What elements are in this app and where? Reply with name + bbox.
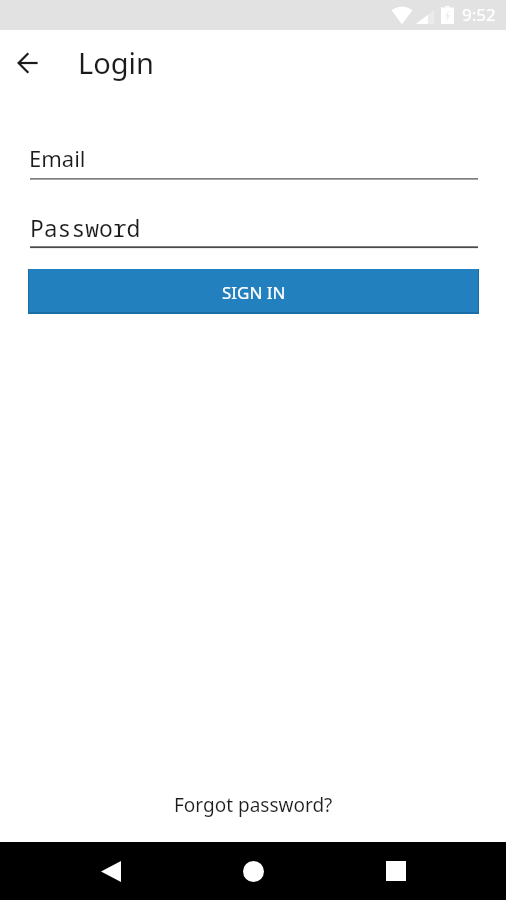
- staticText: Forgot password?: [174, 792, 333, 818]
- button[interactable]: Forgot password?: [0, 782, 506, 818]
- staticText: Email: [29, 143, 86, 173]
- button[interactable]: SIGN IN: [29, 269, 478, 312]
- staticText: Password: [30, 212, 141, 243]
- staticText: Login: [78, 43, 154, 82]
- button[interactable]: Navigate up: [10, 45, 46, 81]
- button[interactable]: Recent apps: [372, 847, 420, 895]
- button[interactable]: Email: [30, 140, 478, 180]
- button[interactable]: Home: [229, 847, 277, 895]
- button[interactable]: Password: [30, 209, 478, 249]
- staticText: SIGN IN: [222, 281, 286, 304]
- staticText: 9:52: [462, 3, 496, 26]
- button[interactable]: Back: [87, 847, 135, 895]
